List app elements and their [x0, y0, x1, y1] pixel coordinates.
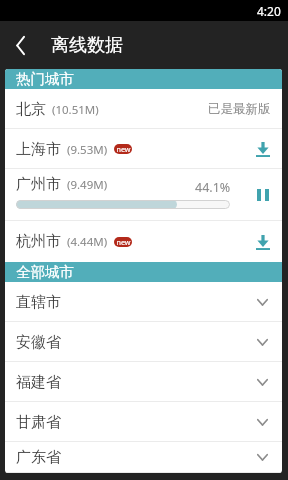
- button[interactable]: 杭州市: [5, 221, 282, 262]
- staticText: 杭州市: [16, 232, 61, 251]
- staticText: 上海市: [16, 140, 61, 159]
- staticText: 福建省: [16, 373, 61, 392]
- staticText: 离线数据: [51, 34, 123, 57]
- button[interactable]: 广州市: [5, 169, 282, 221]
- button[interactable]: 北京: [5, 89, 282, 129]
- button[interactable]: 直辖市: [5, 282, 282, 322]
- staticText: 4:20: [257, 3, 281, 19]
- staticText: (9.49M): [67, 177, 108, 193]
- button[interactable]: Download: [250, 136, 276, 162]
- staticText: 安徽省: [16, 333, 61, 352]
- staticText: 全部城市: [16, 263, 74, 281]
- staticText: 甘肃省: [16, 413, 61, 432]
- button[interactable]: 上海市: [5, 129, 282, 169]
- staticText: (4.44M): [67, 234, 108, 250]
- staticText: 热门城市: [16, 70, 74, 88]
- staticText: new: [116, 144, 131, 154]
- staticText: 广州市: [16, 175, 61, 194]
- button[interactable]: 福建省: [5, 362, 282, 402]
- button[interactable]: Pause: [250, 182, 276, 208]
- staticText: (9.53M): [67, 142, 108, 158]
- staticText: 北京: [16, 100, 46, 119]
- button[interactable]: 安徽省: [5, 322, 282, 362]
- button[interactable]: 甘肃省: [5, 402, 282, 442]
- staticText: (10.51M): [52, 102, 99, 118]
- button[interactable]: Back: [6, 25, 34, 65]
- staticText: 已是最新版: [208, 101, 271, 117]
- staticText: 44.1%: [195, 179, 231, 196]
- button[interactable]: 广东省: [5, 442, 282, 473]
- button[interactable]: Download: [250, 229, 276, 255]
- staticText: 广东省: [16, 448, 61, 467]
- staticText: 直辖市: [16, 293, 61, 312]
- staticText: new: [116, 237, 131, 247]
